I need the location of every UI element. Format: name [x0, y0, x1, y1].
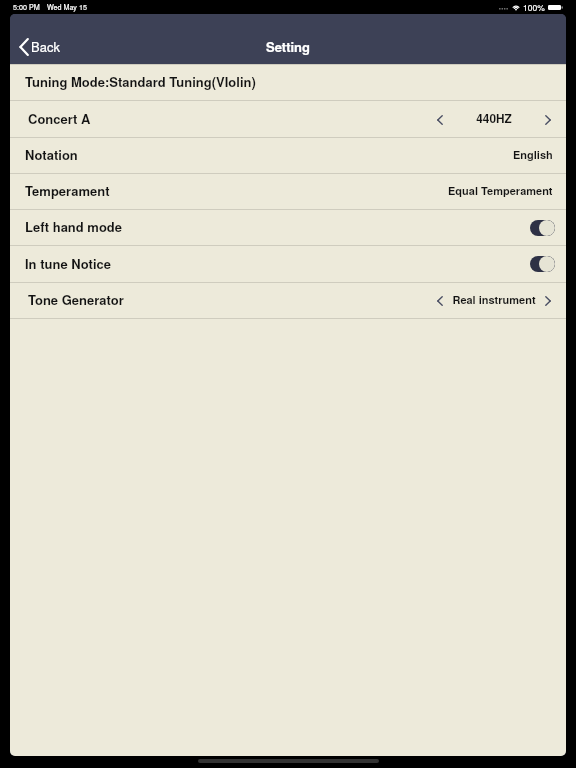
staticText: Wed May 15 [47, 2, 87, 12]
staticText: 100% [523, 1, 545, 13]
button[interactable]: Tuning Mode:Standard Tuning(VIolin) [10, 65, 566, 100]
button[interactable]: Notation [10, 138, 566, 173]
staticText: Temperament [25, 181, 110, 200]
staticText: English [513, 147, 553, 163]
button[interactable]: Previous [428, 104, 452, 135]
staticText: Tone Generator [28, 290, 124, 309]
button[interactable]: In tune Notice [10, 246, 566, 282]
button[interactable]: Toggle Left hand mode [530, 220, 555, 236]
staticText: Back [31, 37, 60, 56]
button[interactable]: Back [18, 37, 60, 56]
staticText: Real instrument [452, 292, 536, 308]
staticText: Equal Temperament [448, 183, 553, 199]
button[interactable]: Next [536, 285, 560, 316]
staticText: In tune Notice [25, 254, 111, 273]
button[interactable]: Left hand mode [10, 210, 566, 245]
staticText: Setting [266, 37, 310, 56]
button[interactable]: Concert A [10, 101, 428, 137]
button[interactable]: Next [536, 104, 560, 135]
staticText: Concert A [28, 109, 91, 128]
staticText: Notation [25, 145, 78, 164]
staticText: Left hand mode [25, 217, 123, 236]
staticText: 440HZ [476, 110, 512, 127]
button[interactable]: Previous [428, 285, 452, 316]
button[interactable]: Toggle In tune Notice [530, 256, 555, 272]
staticText: Tuning Mode:Standard Tuning(VIolin) [25, 72, 256, 91]
button[interactable]: Temperament [10, 174, 566, 209]
staticText: 5:00 PM [13, 2, 40, 12]
button[interactable]: Tone Generator [10, 283, 428, 318]
